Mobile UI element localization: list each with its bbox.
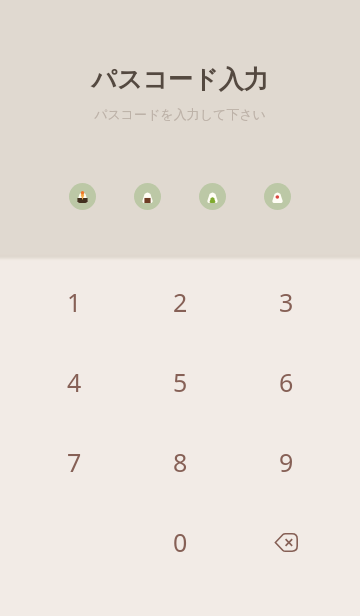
staticText: 8: [173, 445, 188, 479]
staticText: 0: [173, 525, 188, 559]
staticText: 6: [279, 365, 294, 399]
button[interactable]: 4: [21, 359, 127, 405]
button[interactable]: 5: [127, 359, 233, 405]
button[interactable]: 7: [21, 439, 127, 485]
staticText: 1: [67, 285, 82, 319]
staticText: 7: [67, 445, 82, 479]
staticText: 2: [173, 285, 188, 319]
button[interactable]: 3: [233, 279, 339, 325]
other: Backspace: [274, 533, 298, 552]
button[interactable]: 9: [233, 439, 339, 485]
staticText: パスコード入力: [91, 64, 269, 95]
staticText: 3: [279, 285, 294, 319]
button[interactable]: 2: [127, 279, 233, 325]
button[interactable]: 6: [233, 359, 339, 405]
button[interactable]: 0: [127, 519, 233, 565]
button[interactable]: Backspace: [233, 519, 339, 565]
button[interactable]: 8: [127, 439, 233, 485]
staticText: パスコードを入力して下さい: [94, 106, 266, 122]
staticText: 9: [279, 445, 294, 479]
staticText: 5: [173, 365, 188, 399]
staticText: 4: [67, 365, 82, 399]
button[interactable]: 1: [21, 279, 127, 325]
